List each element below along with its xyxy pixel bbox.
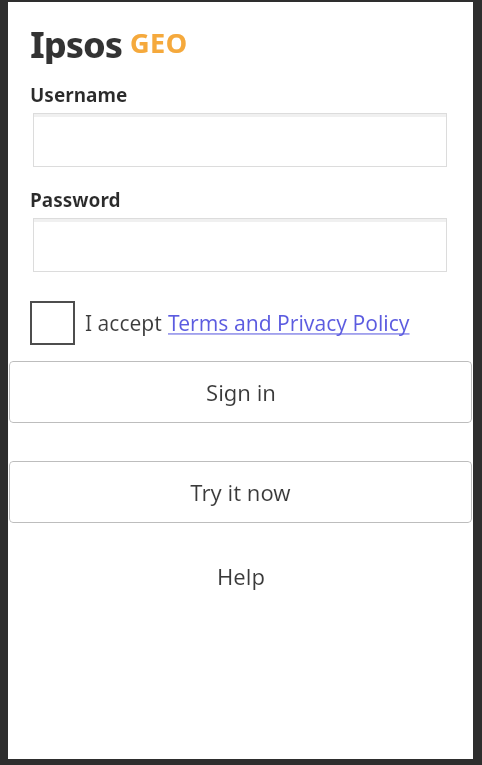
button[interactable]: Sign in [9, 361, 472, 423]
button[interactable] [33, 113, 447, 167]
staticText: GEO [130, 24, 188, 61]
staticText: Try it now [190, 477, 291, 507]
staticText: Username [30, 82, 128, 108]
staticText: Ipsos [30, 20, 123, 64]
staticText: Help [217, 561, 265, 591]
staticText: I accept [85, 309, 168, 338]
staticText: Password [30, 187, 121, 213]
button[interactable]: Help [8, 556, 473, 596]
button[interactable] [33, 218, 447, 272]
staticText: Sign in [206, 377, 276, 407]
button[interactable]: Try it now [9, 461, 472, 523]
button[interactable]: Terms and Privacy Policy [168, 309, 410, 338]
staticText: Terms and Privacy Policy [168, 309, 410, 338]
button[interactable]: I accept terms checkbox [30, 301, 75, 345]
